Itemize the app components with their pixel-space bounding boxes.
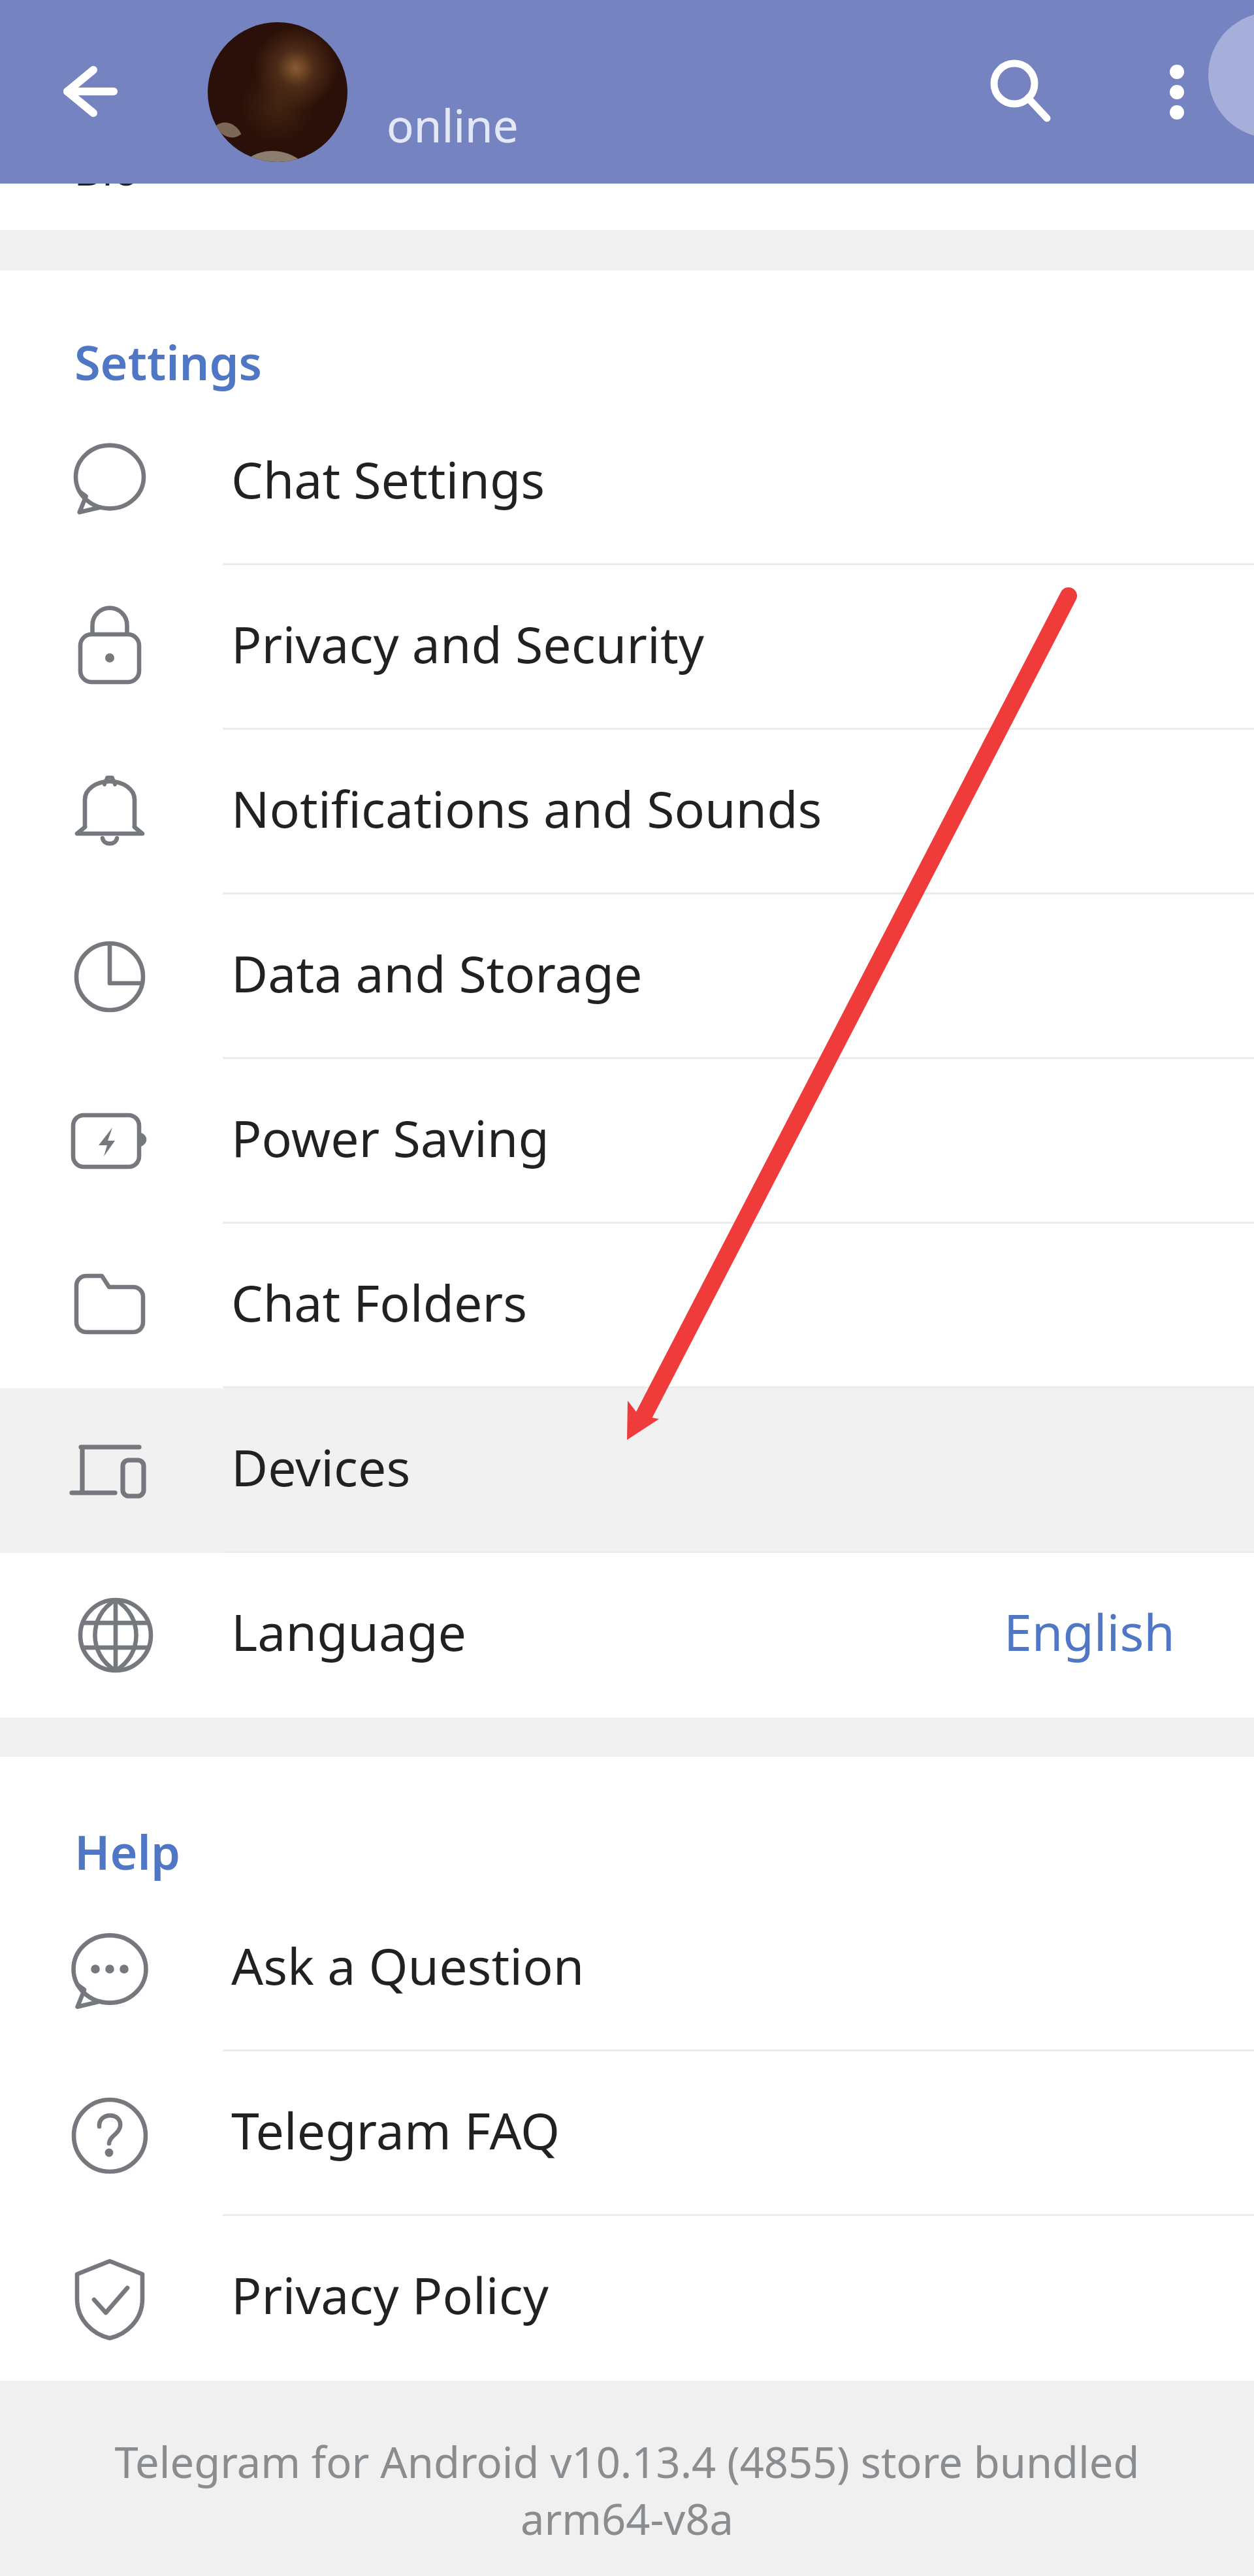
- staticText: Privacy and Security: [231, 610, 704, 678]
- staticText: Notifications and Sounds: [231, 774, 822, 843]
- staticText: Power Saving: [231, 1103, 549, 1172]
- staticText: English: [1004, 1597, 1175, 1666]
- button[interactable]: Notifications and Sounds: [0, 730, 1254, 894]
- staticText: Privacy Policy: [231, 2260, 549, 2329]
- button[interactable]: Telegram FAQ: [0, 2051, 1254, 2216]
- button[interactable]: Language: [0, 1553, 1254, 1718]
- button[interactable]: Profile photo: [208, 22, 347, 162]
- staticText: Settings: [74, 330, 263, 394]
- button[interactable]: Search: [969, 38, 1060, 129]
- button[interactable]: Power Saving: [0, 1059, 1254, 1224]
- staticText: Ask a Question: [231, 1931, 585, 2000]
- button[interactable]: Ask a Question: [0, 1887, 1254, 2051]
- staticText: online: [387, 94, 519, 155]
- staticText: Help: [74, 1819, 181, 1883]
- staticText: Telegram FAQ: [231, 2096, 560, 2164]
- staticText: Telegram for Android v10.13.4 (4855) sto…: [0, 2433, 1254, 2547]
- button[interactable]: Devices: [0, 1388, 1254, 1553]
- staticText: Chat Settings: [231, 445, 545, 514]
- button[interactable]: More options: [1131, 46, 1223, 138]
- staticText: Bio: [74, 139, 139, 198]
- button[interactable]: Chat Settings: [0, 400, 1254, 565]
- button[interactable]: Privacy and Security: [0, 565, 1254, 730]
- staticText: Data and Storage: [231, 939, 643, 1007]
- staticText: Language: [231, 1597, 467, 1666]
- staticText: Devices: [231, 1433, 411, 1501]
- button[interactable]: Chat Folders: [0, 1224, 1254, 1388]
- button[interactable]: Privacy Policy: [0, 2216, 1254, 2381]
- button[interactable]: Back: [46, 46, 137, 137]
- button[interactable]: Data and Storage: [0, 894, 1254, 1059]
- staticText: Chat Folders: [231, 1268, 528, 1337]
